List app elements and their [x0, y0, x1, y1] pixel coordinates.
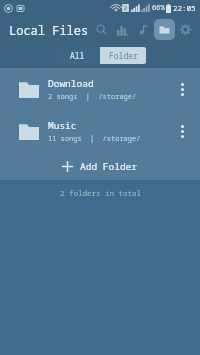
- button[interactable]: Search: [91, 19, 112, 40]
- staticText: All: [70, 50, 85, 61]
- staticText: 2 songs | /storage/emulated/0/D…: [48, 92, 168, 102]
- staticText: Add Folder: [80, 160, 138, 173]
- staticText: Download: [48, 77, 94, 90]
- staticText: 66%: [152, 3, 165, 13]
- button[interactable]: Songs: [133, 19, 154, 40]
- staticText: 11 songs | /storage/emulated/0/…: [48, 134, 168, 144]
- staticText: 2: [124, 5, 127, 12]
- button[interactable]: Folder: [100, 47, 146, 64]
- staticText: Folder: [109, 50, 138, 61]
- button[interactable]: Settings: [175, 19, 196, 40]
- staticText: 22:05: [173, 3, 196, 13]
- button[interactable]: Equalizer: [112, 19, 133, 40]
- button[interactable]: Music: [0, 110, 200, 152]
- button[interactable]: All: [55, 47, 100, 64]
- button[interactable]: Folders: [154, 19, 175, 40]
- staticText: Music: [48, 119, 77, 132]
- button[interactable]: Add Folder: [0, 152, 200, 180]
- staticText: Local Files: [9, 22, 89, 38]
- button[interactable]: More options: [172, 121, 192, 141]
- staticText: 2 folders in total: [60, 188, 141, 198]
- button[interactable]: Download: [0, 68, 200, 110]
- button[interactable]: More options: [172, 79, 192, 99]
